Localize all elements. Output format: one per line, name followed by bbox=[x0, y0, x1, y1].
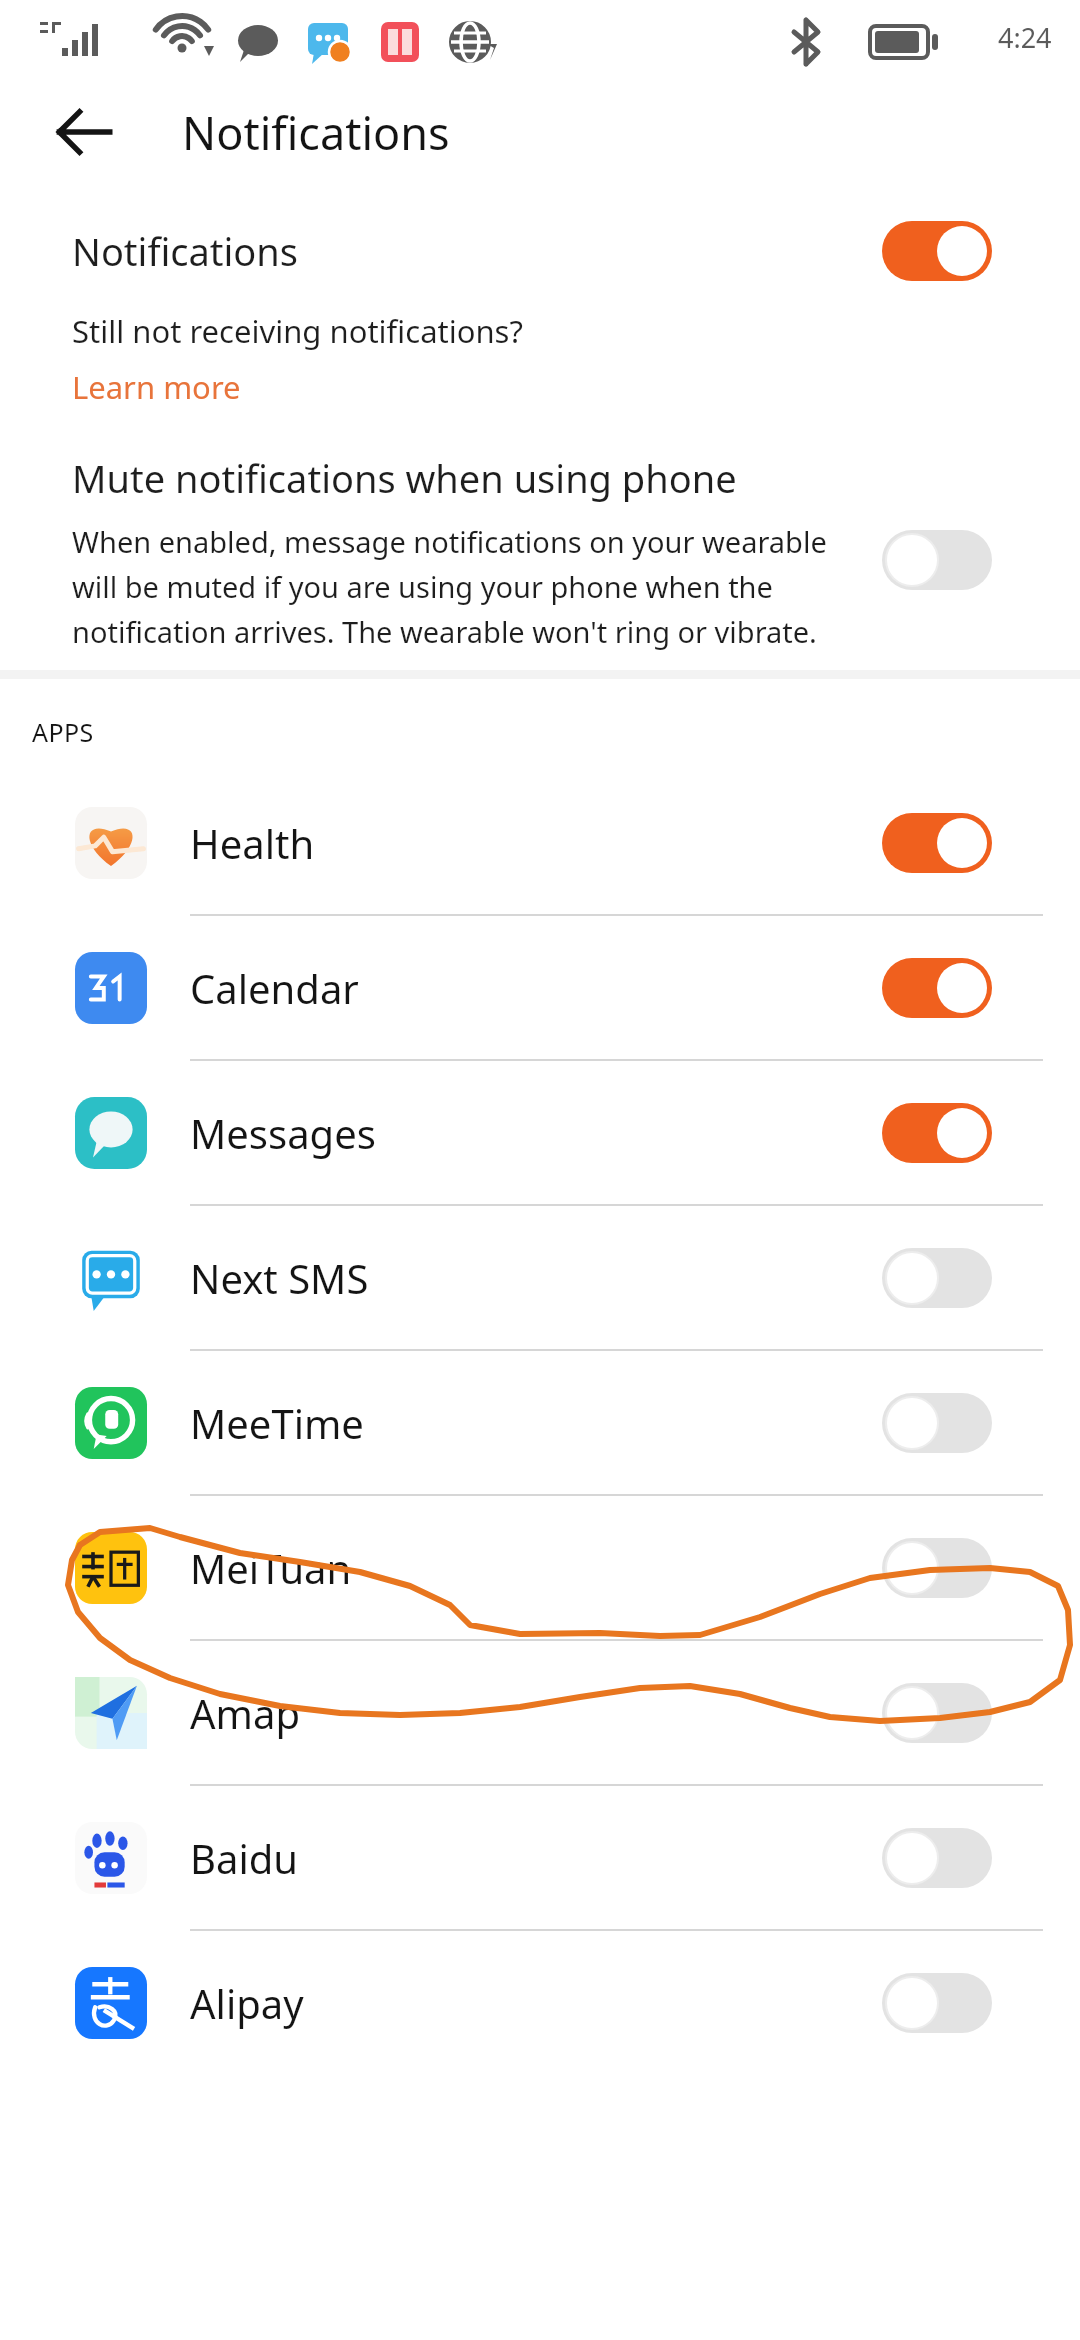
staticText: Calendar bbox=[190, 961, 359, 1015]
staticText: Health bbox=[190, 816, 315, 870]
button[interactable]: Back bbox=[48, 96, 120, 168]
button[interactable]: Calendar bbox=[0, 916, 1080, 1059]
staticText: When enabled, message notifications on y… bbox=[72, 522, 840, 652]
button[interactable]: MeiTuan bbox=[0, 1496, 1080, 1639]
staticText: Amap bbox=[190, 1686, 300, 1740]
button[interactable]: MeeTime bbox=[0, 1351, 1080, 1494]
button[interactable]: Baidu bbox=[0, 1786, 1080, 1929]
staticText: Baidu bbox=[190, 1831, 299, 1885]
staticText: Notifications bbox=[182, 102, 450, 163]
button[interactable]: Learn more bbox=[72, 366, 241, 408]
staticText: Mute notifications when using phone bbox=[72, 452, 737, 504]
staticText: Notifications bbox=[72, 225, 299, 277]
button[interactable]: Alipay bbox=[0, 1931, 1080, 2074]
button[interactable]: Notifications bbox=[0, 192, 1080, 310]
button[interactable]: Next SMS bbox=[0, 1206, 1080, 1349]
staticText: Learn more bbox=[72, 366, 241, 408]
button[interactable]: Amap bbox=[0, 1641, 1080, 1784]
staticText: MeiTuan bbox=[190, 1541, 352, 1595]
staticText: APPS bbox=[32, 715, 94, 749]
staticText: Messages bbox=[190, 1106, 376, 1160]
staticText: Still not receiving notifications? bbox=[72, 310, 523, 352]
button[interactable]: Mute notifications when using phone bbox=[0, 452, 1080, 652]
staticText: MeeTime bbox=[190, 1396, 364, 1450]
button[interactable]: Health bbox=[0, 771, 1080, 914]
staticText: Alipay bbox=[190, 1976, 304, 2030]
staticText: 4:24 bbox=[998, 19, 1052, 56]
button[interactable]: Messages bbox=[0, 1061, 1080, 1204]
staticText: Next SMS bbox=[190, 1251, 369, 1305]
